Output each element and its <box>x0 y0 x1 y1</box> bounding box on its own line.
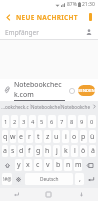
staticText: 7 <box>60 118 64 126</box>
button[interactable]: Add contact <box>82 25 96 39</box>
button[interactable]: Settings <box>14 173 23 185</box>
button[interactable]: 1 <box>2 115 9 128</box>
staticText: j <box>56 146 58 156</box>
staticText: e <box>19 132 23 142</box>
button[interactable]: ä <box>89 145 96 157</box>
staticText: h <box>45 146 50 156</box>
button[interactable]: Notebookcheck... <box>61 101 90 112</box>
staticText: 4 <box>31 118 35 126</box>
button[interactable]: i <box>62 130 69 143</box>
staticText: d <box>19 146 24 156</box>
staticText: u <box>54 132 59 142</box>
button[interactable]: ü <box>89 130 96 143</box>
button[interactable]: Deutsch <box>25 173 73 185</box>
staticText: b <box>56 160 61 170</box>
staticText: v <box>46 160 50 170</box>
button[interactable]: p <box>80 130 87 143</box>
button[interactable]: 9 <box>78 115 86 128</box>
staticText: o <box>72 132 77 142</box>
button[interactable]: Empfänger <box>0 25 98 39</box>
button[interactable]: 2 <box>11 115 18 128</box>
button[interactable]: j <box>53 145 60 157</box>
staticText: 0 <box>90 118 94 126</box>
button[interactable]: Attach <box>0 83 14 97</box>
button[interactable]: l <box>71 145 78 157</box>
staticText: 5 <box>40 118 44 126</box>
button[interactable]: c <box>34 159 42 171</box>
button[interactable]: m <box>74 159 82 171</box>
staticText: , <box>79 174 81 184</box>
button[interactable]: q <box>2 130 8 143</box>
button[interactable]: 3 <box>20 115 27 128</box>
button[interactable]: x <box>24 159 32 171</box>
button[interactable]: k <box>62 145 69 157</box>
button[interactable]: 7 <box>58 115 66 128</box>
button[interactable]: t <box>35 130 42 143</box>
button[interactable]: Enter <box>86 173 96 185</box>
button[interactable]: , <box>75 173 84 185</box>
button[interactable]: r <box>26 130 33 143</box>
staticText: l <box>74 146 76 156</box>
button[interactable]: ...ookcheck.com <box>0 101 30 112</box>
staticText: t <box>37 132 40 142</box>
staticText: g <box>36 146 41 156</box>
button[interactable]: Shift <box>2 159 13 171</box>
button[interactable]: n <box>64 159 72 171</box>
button[interactable]: More options <box>82 9 98 25</box>
staticText: q <box>3 132 8 142</box>
button[interactable]: 5 <box>38 115 46 128</box>
button[interactable]: v <box>44 159 52 171</box>
button[interactable]: u <box>53 130 60 143</box>
staticText: !#@ <box>3 176 12 182</box>
button[interactable]: h <box>44 145 51 157</box>
staticText: x <box>26 160 30 170</box>
button[interactable]: Recents <box>0 188 32 201</box>
staticText: Notebookcheck... <box>61 104 90 110</box>
staticText: ...ookcheck.com <box>0 104 30 110</box>
button[interactable]: 6 <box>48 115 56 128</box>
button[interactable]: e <box>18 130 24 143</box>
staticText: k <box>64 146 68 156</box>
staticText: Empfänger <box>5 28 39 37</box>
button[interactable]: a <box>2 145 8 157</box>
staticText: z <box>46 132 50 142</box>
button[interactable]: !#@ <box>2 173 12 185</box>
button[interactable]: 4 <box>29 115 36 128</box>
staticText: p <box>81 132 86 142</box>
button[interactable]: Emoji <box>65 84 78 97</box>
staticText: ä <box>91 146 95 156</box>
staticText: NEUE NACHRICHT <box>16 13 78 22</box>
staticText: 21:30 <box>82 1 95 8</box>
button[interactable]: s <box>10 145 16 157</box>
button[interactable]: 0 <box>88 115 96 128</box>
button[interactable]: ö <box>80 145 87 157</box>
staticText: 2 <box>13 118 17 126</box>
button[interactable]: More suggestions <box>90 101 98 112</box>
button[interactable]: Notebookcheck... <box>31 101 60 112</box>
staticText: w <box>10 132 16 142</box>
button[interactable]: b <box>54 159 62 171</box>
button[interactable]: 8 <box>68 115 76 128</box>
staticText: 8 <box>70 118 74 126</box>
button[interactable]: f <box>26 145 33 157</box>
staticText: ö <box>81 146 86 156</box>
button[interactable]: z <box>44 130 51 143</box>
staticText: a <box>3 146 7 156</box>
staticText: 87% <box>67 1 77 8</box>
button[interactable]: Back <box>0 9 16 25</box>
staticText: 1 <box>4 118 8 126</box>
button[interactable]: Backspace <box>84 159 96 171</box>
staticText: y <box>17 160 21 170</box>
button[interactable]: SENDEN <box>78 85 95 96</box>
staticText: Notebookcheck... <box>31 104 60 110</box>
button[interactable]: o <box>71 130 78 143</box>
button[interactable]: w <box>10 130 16 143</box>
button[interactable]: y <box>15 159 22 171</box>
staticText: 6 <box>50 118 54 126</box>
staticText: Deutsch <box>40 176 59 183</box>
button[interactable]: d <box>18 145 24 157</box>
button[interactable]: Home <box>32 188 65 201</box>
staticText: i <box>65 132 67 142</box>
button[interactable]: g <box>35 145 42 157</box>
button[interactable]: Hide keyboard <box>65 188 98 201</box>
